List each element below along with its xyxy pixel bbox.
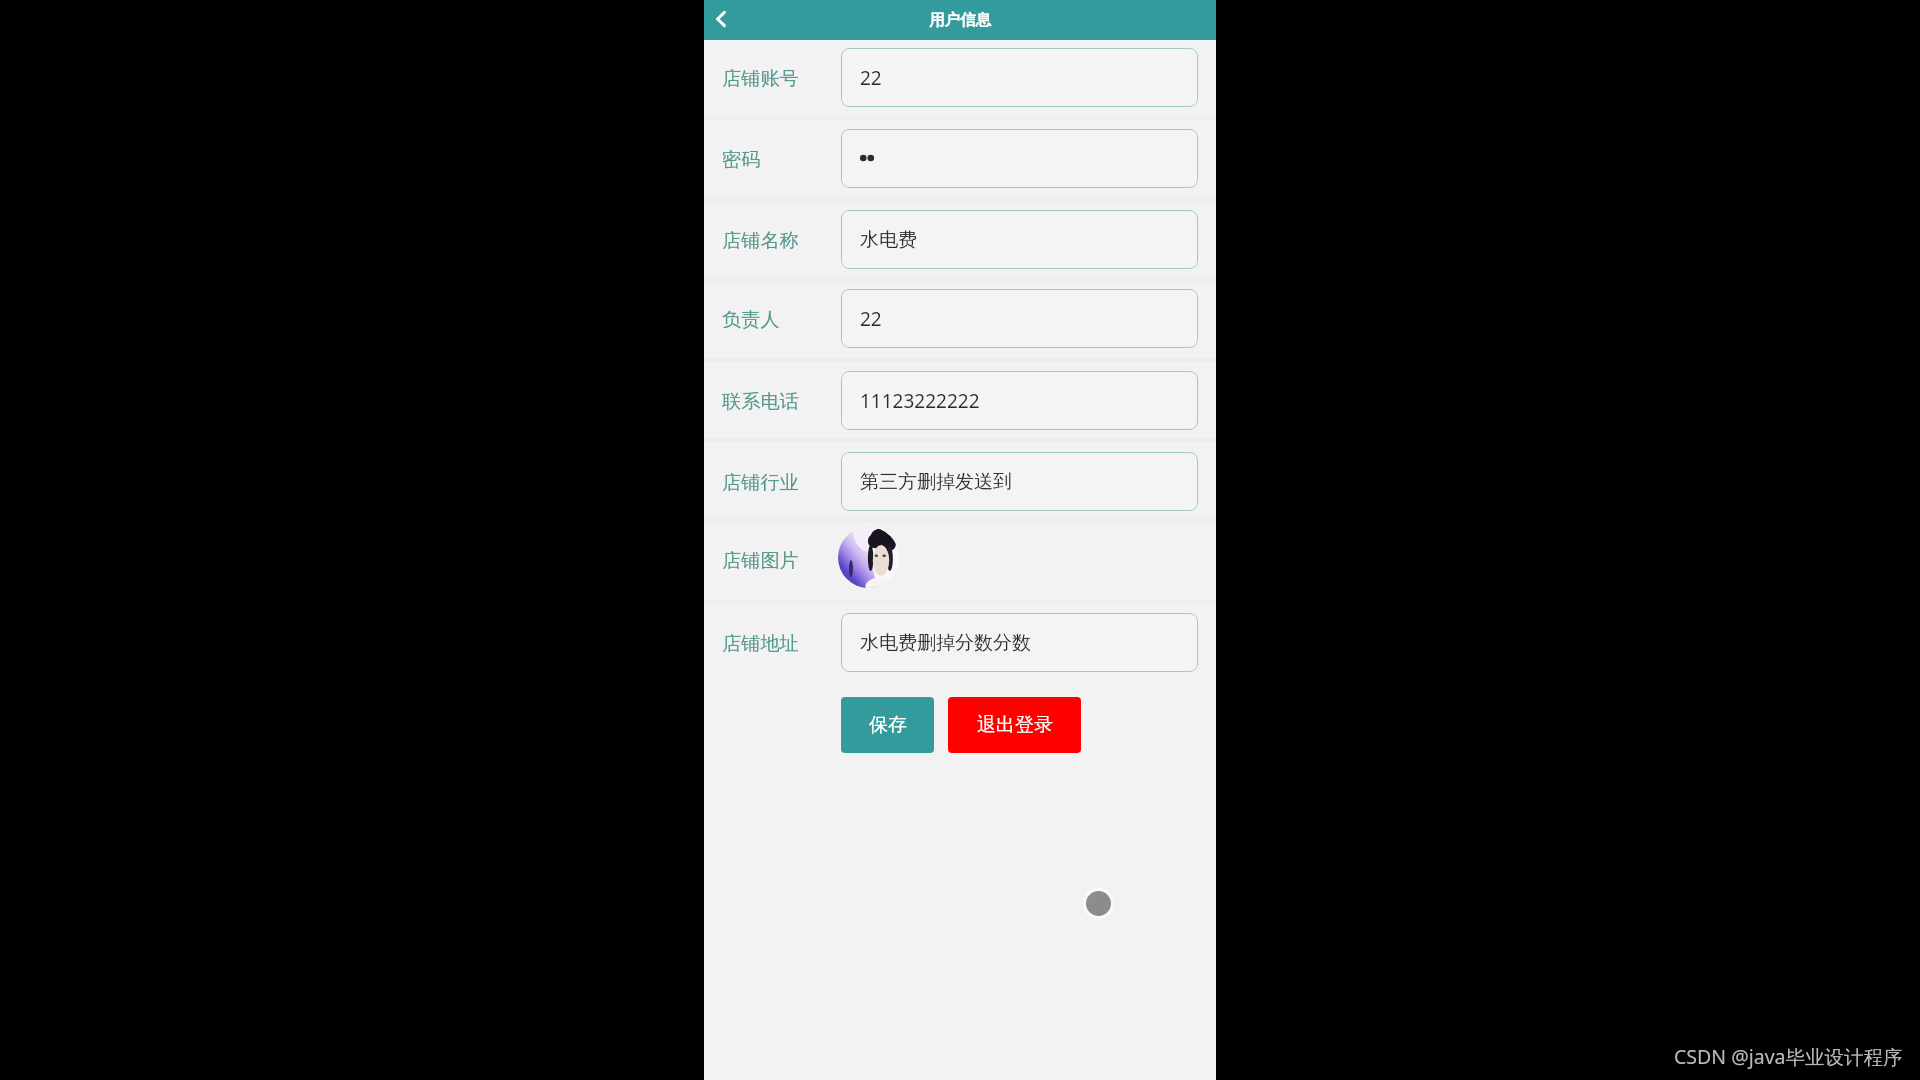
staticText: 22 [860, 65, 882, 91]
other: 店铺图片 [838, 527, 899, 588]
staticText: 保存 [869, 713, 907, 737]
staticText: 22 [860, 306, 882, 332]
staticText: 负责人 [722, 308, 780, 332]
button[interactable]: 负责人 [704, 281, 1216, 356]
button[interactable]: 保存 [841, 697, 934, 753]
button[interactable]: 店铺名称 [704, 202, 1216, 277]
staticText: 退出登录 [977, 713, 1053, 737]
staticText: 店铺名称 [722, 229, 799, 253]
button[interactable]: 店铺账号 [704, 40, 1216, 115]
staticText: 11123222222 [860, 388, 980, 414]
button[interactable]: 店铺行业 [704, 444, 1216, 519]
staticText: 水电费 [860, 228, 917, 252]
button[interactable]: Back [704, 0, 738, 40]
staticText: 店铺行业 [722, 471, 799, 495]
staticText: 联系电话 [722, 390, 799, 414]
staticText: 店铺地址 [722, 632, 799, 656]
staticText: 第三方删掉发送到 [860, 470, 1012, 494]
staticText: CSDN @java毕业设计程序 [1674, 1043, 1903, 1070]
staticText: 店铺图片 [722, 549, 799, 573]
button[interactable]: 密码 [704, 121, 1216, 196]
button[interactable]: 店铺图片 [704, 524, 1216, 596]
button[interactable]: 退出登录 [948, 697, 1081, 753]
staticText: 密码 [722, 148, 761, 172]
button[interactable]: 店铺地址 [704, 605, 1216, 680]
staticText: 用户信息 [929, 10, 991, 30]
staticText: 店铺账号 [722, 67, 799, 91]
staticText: 水电费删掉分数分数 [860, 631, 1031, 655]
button[interactable]: 联系电话 [704, 363, 1216, 438]
